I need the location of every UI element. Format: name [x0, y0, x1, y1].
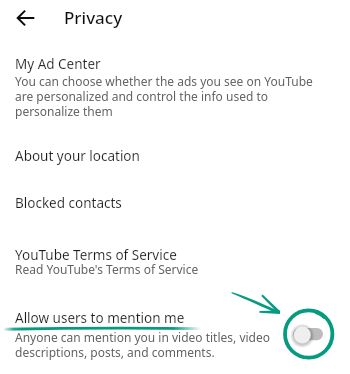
button[interactable]: About your location: [0, 140, 350, 170]
staticText: You can choose whether the ads you see o…: [15, 73, 317, 119]
staticText: Blocked contacts: [15, 194, 122, 212]
staticText: Anyone can mention you in video titles, …: [15, 329, 273, 360]
button[interactable]: Back: [10, 2, 42, 34]
button[interactable]: Blocked contacts: [0, 187, 350, 217]
staticText: Read YouTube's Terms of Service: [15, 261, 199, 277]
staticText: My Ad Center: [15, 55, 101, 73]
staticText: Allow users to mention me: [15, 309, 185, 327]
button[interactable]: Allow users to mention me toggle: [291, 321, 325, 347]
staticText: About your location: [15, 147, 140, 165]
staticText: Privacy: [64, 6, 123, 29]
button[interactable]: Allow users to mention me: [0, 301, 350, 374]
button[interactable]: My Ad Center: [0, 48, 350, 120]
button[interactable]: YouTube Terms of Service: [0, 239, 350, 281]
staticText: YouTube Terms of Service: [15, 246, 177, 264]
